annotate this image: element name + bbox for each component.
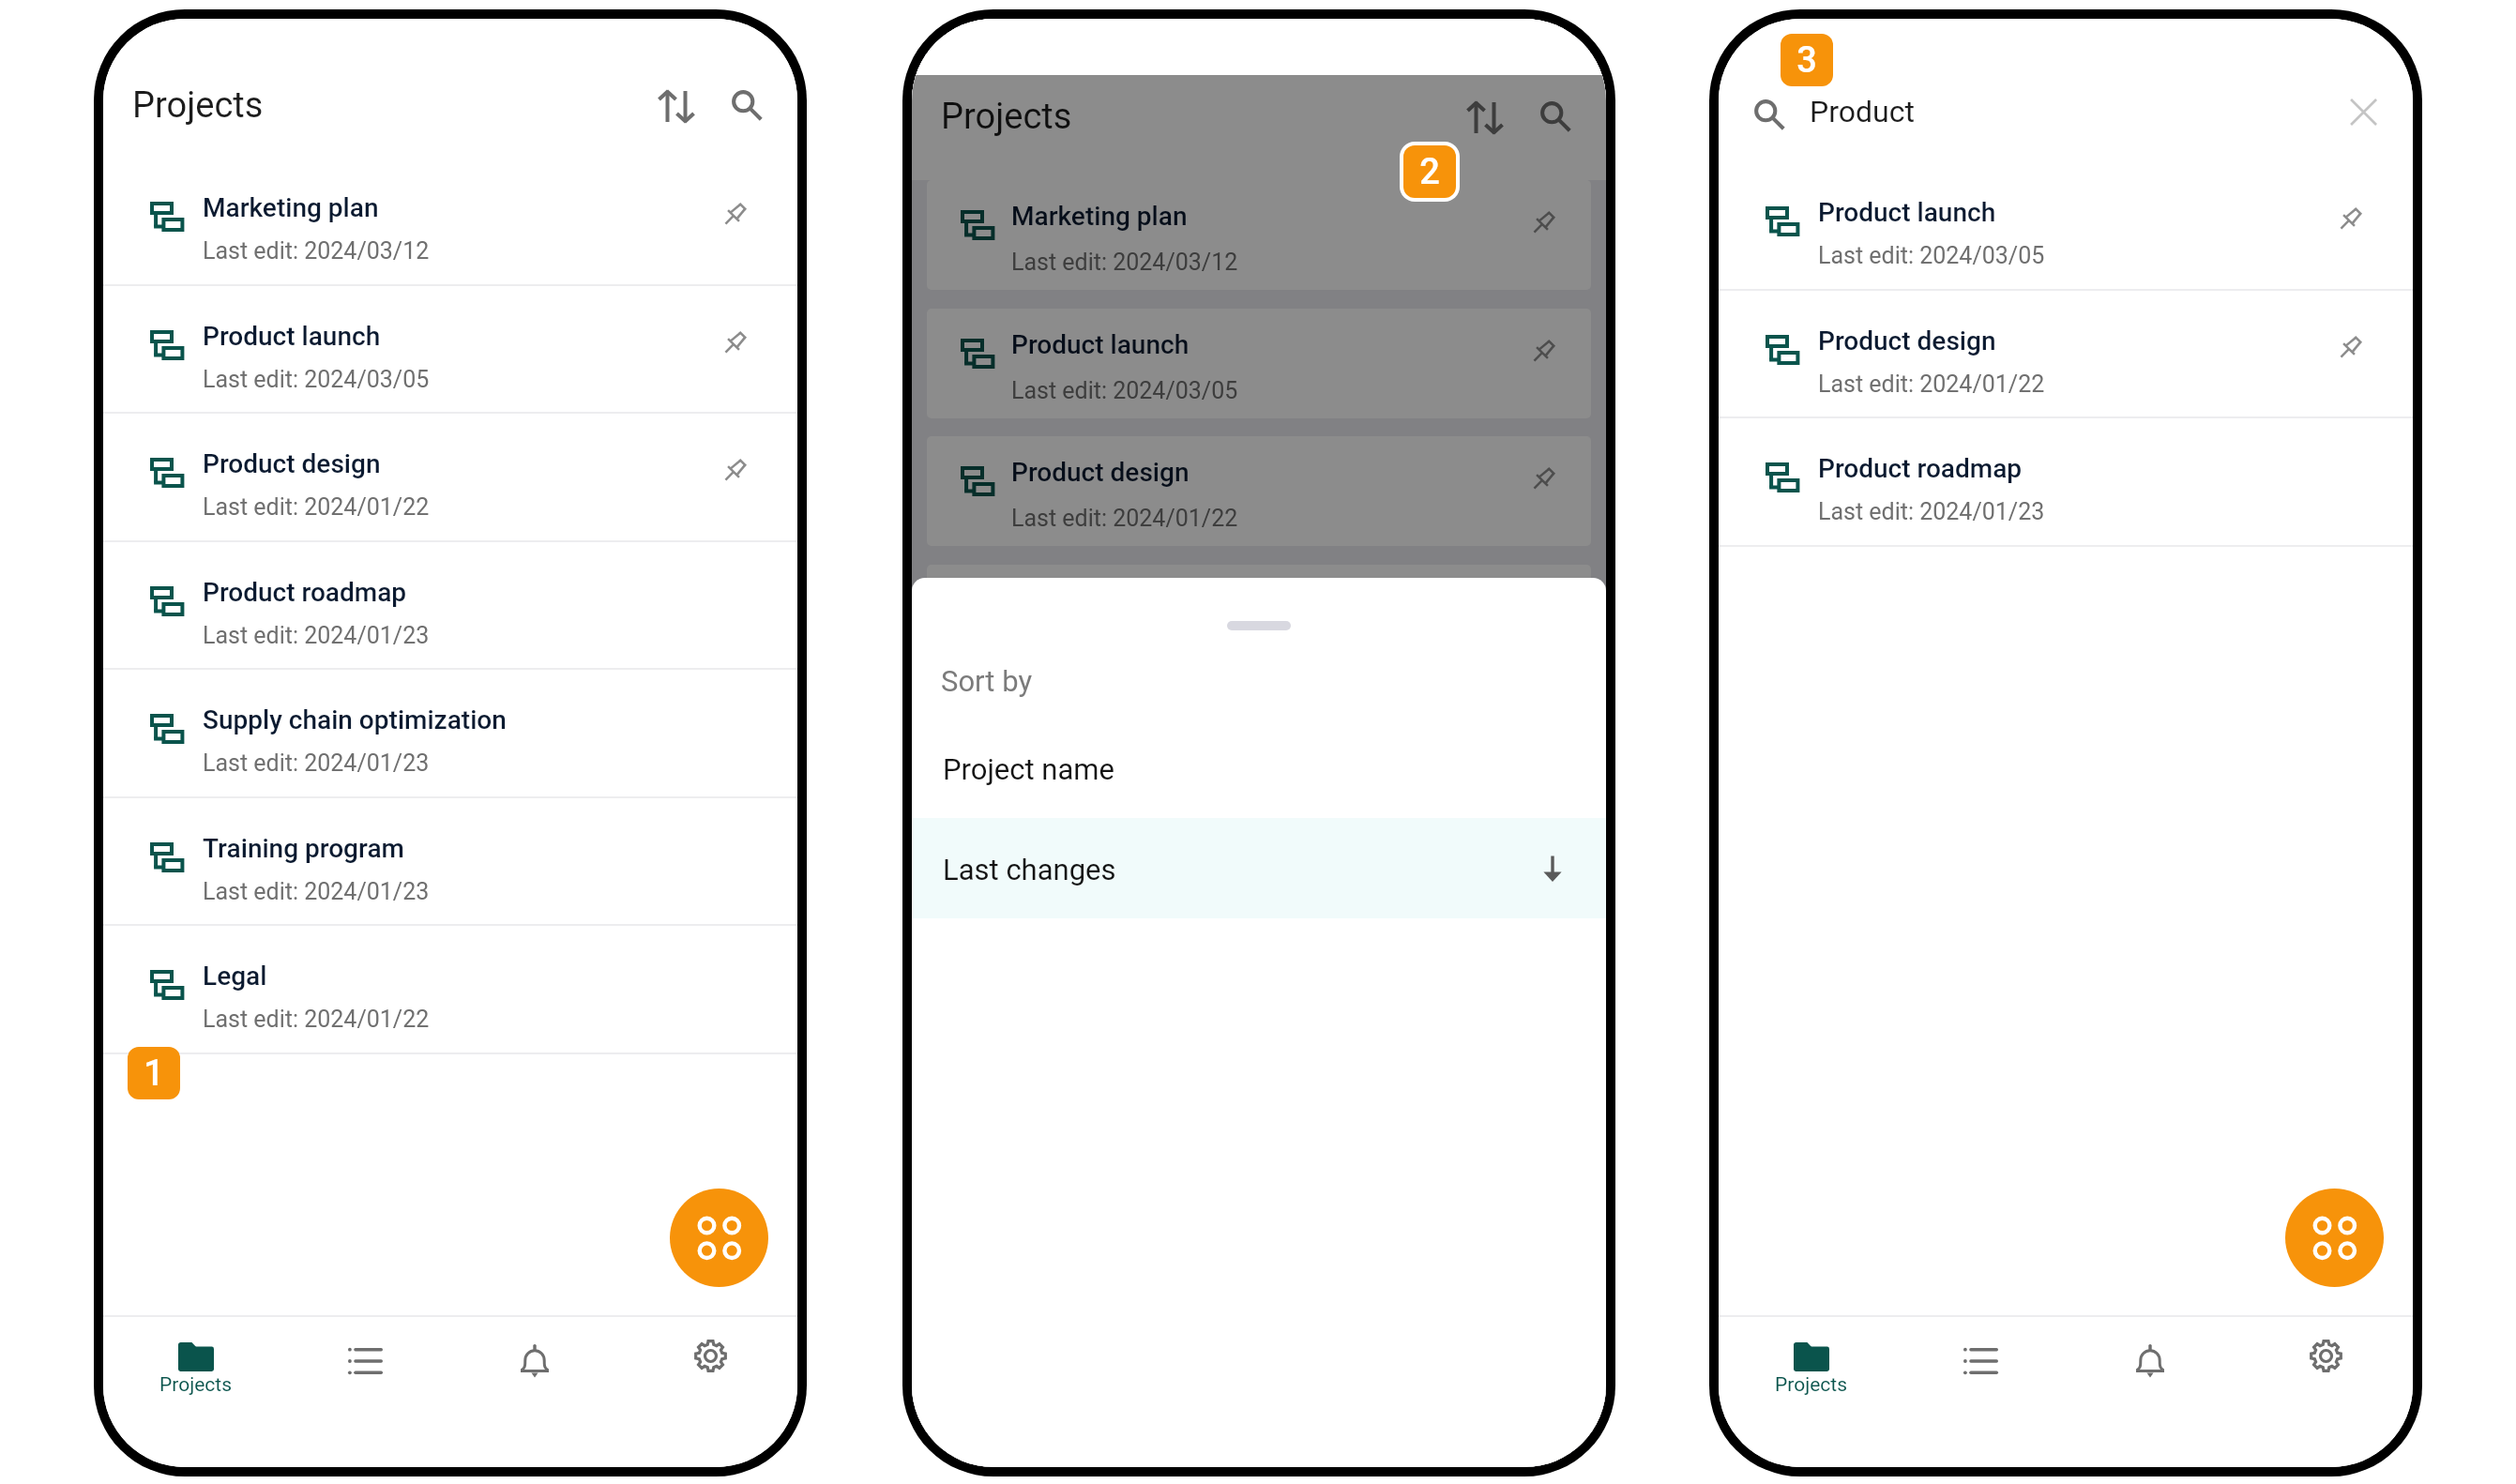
- staticText: Last edit: 2024/01/23: [1818, 498, 2045, 525]
- staticText: 3: [1796, 39, 1817, 82]
- staticText: Last edit: 2024/01/23: [203, 622, 430, 649]
- button[interactable]: Product design: [103, 414, 797, 542]
- button[interactable]: Notifications: [460, 1326, 610, 1439]
- button[interactable]: Clear search: [2329, 78, 2387, 136]
- button[interactable]: Pin: [1519, 455, 1568, 504]
- button[interactable]: Supply chain optimization: [103, 670, 797, 798]
- staticText: 2: [1419, 151, 1440, 193]
- button[interactable]: Project name: [912, 719, 1606, 818]
- button[interactable]: Notifications: [2075, 1326, 2225, 1439]
- staticText: Product launch: [1011, 329, 1190, 360]
- button[interactable]: Pin: [1519, 327, 1568, 376]
- staticText: Marketing plan: [1011, 201, 1188, 232]
- staticText: Product launch: [203, 321, 381, 352]
- staticText: Projects: [1775, 1373, 1847, 1397]
- staticText: Last edit: 2024/01/22: [1011, 505, 1238, 532]
- staticText: Projects: [159, 1373, 232, 1397]
- staticText: Last edit: 2024/01/23: [203, 750, 430, 777]
- staticText: Projects: [941, 96, 1072, 138]
- button[interactable]: Pin: [710, 447, 759, 495]
- button[interactable]: Product launch: [1719, 162, 2413, 291]
- button[interactable]: Pin: [2326, 324, 2374, 372]
- button[interactable]: Marketing plan: [103, 158, 797, 286]
- button[interactable]: Pin: [1519, 199, 1568, 248]
- button[interactable]: Pin: [710, 190, 759, 239]
- staticText: Last edit: 2024/01/22: [203, 1006, 430, 1033]
- staticText: Product launch: [1818, 197, 1996, 228]
- button[interactable]: Pin: [2326, 195, 2374, 244]
- button[interactable]: Product roadmap: [1719, 418, 2413, 547]
- button[interactable]: Product design: [1719, 291, 2413, 419]
- staticText: Product design: [1011, 457, 1190, 488]
- button[interactable]: Last changes: [912, 818, 1606, 918]
- button[interactable]: Product: [1719, 73, 2310, 146]
- staticText: Last changes: [943, 853, 1116, 886]
- staticText: Last edit: 2024/03/05: [1818, 242, 2045, 269]
- staticText: Last edit: 2024/03/12: [1011, 249, 1238, 276]
- button[interactable]: Tasks: [1905, 1326, 2055, 1439]
- staticText: Product roadmap: [1818, 453, 2023, 484]
- button[interactable]: Projects: [1735, 1326, 1886, 1439]
- button[interactable]: Add: [670, 1189, 768, 1287]
- button[interactable]: Product design: [927, 436, 1591, 546]
- button[interactable]: Settings: [635, 1326, 785, 1439]
- staticText: Product roadmap: [203, 577, 407, 608]
- button[interactable]: Product roadmap: [103, 542, 797, 671]
- button[interactable]: Product launch: [103, 286, 797, 415]
- button[interactable]: Pin: [710, 319, 759, 368]
- staticText: Last edit: 2024/03/05: [1011, 377, 1238, 404]
- button[interactable]: Search: [718, 76, 776, 134]
- staticText: Last edit: 2024/03/05: [203, 366, 430, 393]
- staticText: Last edit: 2024/01/22: [1818, 371, 2045, 398]
- button[interactable]: Search: [1526, 87, 1584, 145]
- button[interactable]: Product launch: [927, 309, 1591, 418]
- button[interactable]: Product roadmap: [927, 565, 1591, 674]
- button[interactable]: Legal: [103, 926, 797, 1054]
- staticText: Product design: [203, 448, 381, 479]
- staticText: Training program: [203, 833, 404, 864]
- staticText: Supply chain optimization: [203, 704, 507, 735]
- button[interactable]: Add: [2285, 1189, 2384, 1287]
- staticText: Legal: [203, 961, 267, 992]
- staticText: Marketing plan: [203, 192, 379, 223]
- staticText: Sort by: [941, 664, 1033, 698]
- staticText: Projects: [132, 84, 264, 127]
- button[interactable]: Sort: [647, 77, 705, 135]
- button[interactable]: Projects: [120, 1326, 270, 1439]
- staticText: Product: [1810, 94, 1915, 129]
- button[interactable]: Tasks: [290, 1326, 440, 1439]
- staticText: Project name: [943, 752, 1114, 786]
- staticText: Product design: [1818, 326, 1996, 356]
- staticText: Last edit: 2024/01/22: [203, 493, 430, 521]
- button[interactable]: Training program: [103, 798, 797, 927]
- button[interactable]: Sort: [1456, 88, 1514, 146]
- button[interactable]: Marketing plan: [927, 180, 1591, 290]
- button[interactable]: Settings: [2251, 1326, 2401, 1439]
- staticText: Last edit: 2024/01/23: [203, 878, 430, 905]
- staticText: Last edit: 2024/03/12: [203, 237, 430, 265]
- staticText: 1: [144, 1052, 164, 1095]
